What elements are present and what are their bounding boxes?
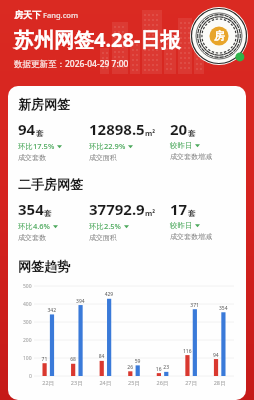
- staticText: 较昨日: [170, 141, 193, 150]
- staticText: 环比4.6%: [18, 221, 51, 231]
- staticText: 354: [18, 199, 44, 219]
- staticText: m²: [145, 128, 156, 138]
- staticText: 套: [188, 129, 196, 138]
- staticText: 成交套数增减: [170, 232, 212, 241]
- staticText: 成交面积: [89, 233, 117, 242]
- staticText: m²: [145, 208, 156, 218]
- staticText: 套: [44, 209, 52, 218]
- staticText: 17: [170, 199, 188, 219]
- staticText: 苏州网签4.28-日报: [14, 26, 181, 53]
- staticText: 20: [170, 119, 188, 139]
- staticText: 12898.5: [89, 119, 145, 139]
- button[interactable]: 新房网签: [8, 96, 246, 162]
- staticText: Fang.com: [43, 10, 79, 20]
- staticText: 环比22.9%: [89, 141, 126, 151]
- staticText: 环比17.5%: [18, 141, 55, 151]
- staticText: 成交面积: [89, 153, 117, 162]
- button[interactable]: 二手房网签: [8, 176, 246, 242]
- staticText: 94: [18, 119, 36, 139]
- staticText: 数据更新至：2026-04-29 7:00: [14, 58, 129, 70]
- staticText: 套: [36, 129, 44, 138]
- staticText: 37792.9: [89, 199, 145, 219]
- button[interactable]: 房天下印章: [190, 7, 248, 65]
- staticText: 环比2.5%: [89, 221, 122, 231]
- staticText: 成交套数: [18, 233, 46, 242]
- staticText: 房: [214, 29, 225, 43]
- staticText: 房天下: [14, 9, 41, 20]
- staticText: 网签趋势: [18, 258, 70, 274]
- staticText: 较昨日: [170, 221, 193, 230]
- staticText: 二手房网签: [18, 176, 83, 192]
- staticText: 成交套数: [18, 153, 46, 162]
- staticText: 成交套数增减: [170, 152, 212, 161]
- staticText: 新房网签: [18, 96, 70, 112]
- staticText: 套: [188, 209, 196, 218]
